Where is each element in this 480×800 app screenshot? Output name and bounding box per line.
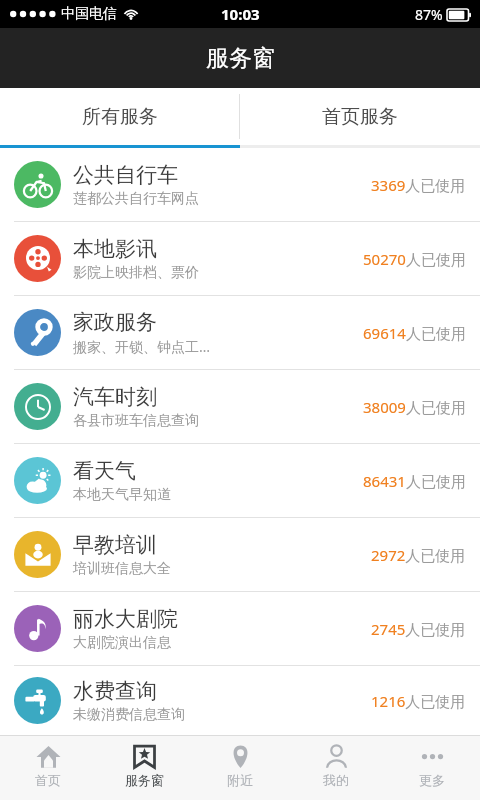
- button[interactable]: 首页: [0, 736, 96, 800]
- button[interactable]: 看天气: [0, 444, 480, 517]
- staticText: 首页服务: [322, 105, 398, 129]
- staticText: 公共自行车: [73, 162, 178, 188]
- staticText: 本地天气早知道: [73, 486, 171, 504]
- staticText: 69614人已使用: [363, 323, 466, 343]
- staticText: 搬家、开锁、钟点工…: [73, 337, 211, 356]
- staticText: 87%: [415, 5, 443, 24]
- button[interactable]: 首页服务: [240, 88, 480, 145]
- staticText: 服务窗: [125, 772, 164, 788]
- staticText: 家政服务: [73, 309, 157, 335]
- button[interactable]: 丽水大剧院: [0, 592, 480, 665]
- staticText: 培训班信息大全: [73, 560, 171, 578]
- staticText: 水费查询: [73, 678, 157, 704]
- button[interactable]: 水费查询: [0, 666, 480, 735]
- staticText: 10:03: [221, 4, 260, 24]
- staticText: 中国电信: [61, 5, 117, 23]
- staticText: 服务窗: [206, 44, 275, 73]
- button[interactable]: 汽车时刻: [0, 370, 480, 443]
- staticText: 38009人已使用: [363, 397, 466, 417]
- staticText: 早教培训: [73, 532, 157, 558]
- staticText: 首页: [35, 772, 61, 788]
- button[interactable]: 所有服务: [0, 88, 239, 145]
- button[interactable]: 公共自行车: [0, 148, 480, 221]
- staticText: 影院上映排档、票价: [73, 264, 199, 282]
- staticText: 丽水大剧院: [73, 606, 178, 632]
- staticText: 莲都公共自行车网点: [73, 190, 199, 208]
- staticText: 看天气: [73, 458, 136, 484]
- button[interactable]: 家政服务: [0, 296, 480, 369]
- button[interactable]: 本地影讯: [0, 222, 480, 295]
- staticText: 2972人已使用: [371, 545, 466, 565]
- staticText: 各县市班车信息查询: [73, 412, 199, 430]
- staticText: 大剧院演出信息: [73, 634, 171, 652]
- staticText: 汽车时刻: [73, 384, 157, 410]
- button[interactable]: 我的: [288, 736, 384, 800]
- button[interactable]: 服务窗: [96, 736, 192, 800]
- staticText: 50270人已使用: [363, 249, 466, 269]
- staticText: 更多: [419, 772, 445, 788]
- staticText: 我的: [323, 772, 349, 788]
- staticText: 所有服务: [82, 105, 158, 129]
- button[interactable]: 附近: [192, 736, 288, 800]
- staticText: 附近: [227, 772, 253, 788]
- staticText: 未缴消费信息查询: [73, 706, 185, 724]
- button[interactable]: 更多: [384, 736, 480, 800]
- staticText: 2745人已使用: [371, 619, 466, 639]
- staticText: 1216人已使用: [371, 691, 466, 711]
- staticText: 3369人已使用: [371, 175, 466, 195]
- button[interactable]: 早教培训: [0, 518, 480, 591]
- staticText: 本地影讯: [73, 236, 157, 262]
- staticText: 86431人已使用: [363, 471, 466, 491]
